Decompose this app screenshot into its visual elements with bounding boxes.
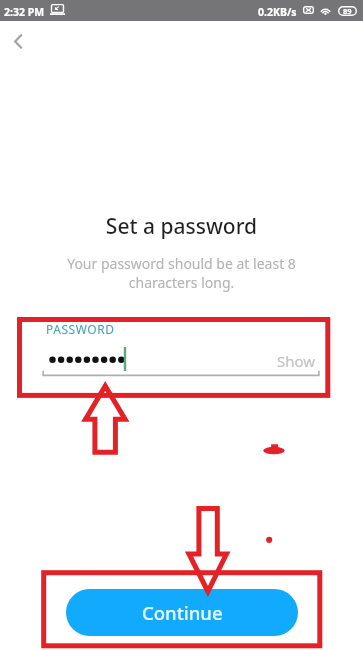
staticText: 89 bbox=[343, 6, 352, 16]
staticText: 2:32 PM bbox=[4, 5, 45, 19]
button[interactable]: Continue bbox=[66, 589, 298, 636]
staticText: Continue bbox=[142, 600, 223, 625]
button[interactable]: Back bbox=[1, 24, 35, 58]
staticText: PASSWORD bbox=[46, 321, 115, 337]
button[interactable]: Show bbox=[277, 351, 316, 371]
staticText: Set a password bbox=[0, 212, 363, 241]
staticText: Your password should be at least 8 chara… bbox=[0, 254, 363, 292]
staticText: 0.2KB/s bbox=[258, 5, 297, 19]
